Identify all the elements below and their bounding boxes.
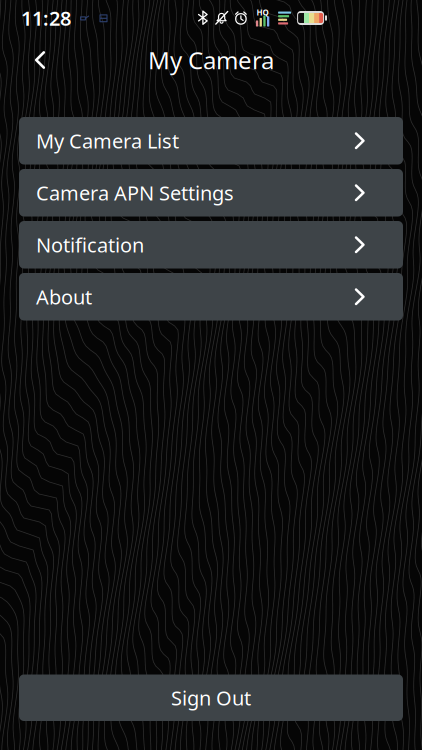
staticText: About <box>36 283 92 310</box>
button[interactable]: Back <box>18 38 62 82</box>
button[interactable]: Sign Out <box>19 674 403 721</box>
button[interactable]: My Camera List <box>19 117 403 164</box>
staticText: Camera APN Settings <box>36 179 234 206</box>
button[interactable]: Notification <box>19 221 403 268</box>
staticText: My Camera List <box>36 127 179 154</box>
staticText: My Camera <box>148 44 274 76</box>
staticText: 11:28 <box>21 5 71 31</box>
button[interactable]: Camera APN Settings <box>19 169 403 216</box>
staticText: Notification <box>36 231 144 258</box>
staticText: Sign Out <box>171 684 251 711</box>
button[interactable]: About <box>19 273 403 320</box>
staticText: HQ <box>257 7 269 18</box>
